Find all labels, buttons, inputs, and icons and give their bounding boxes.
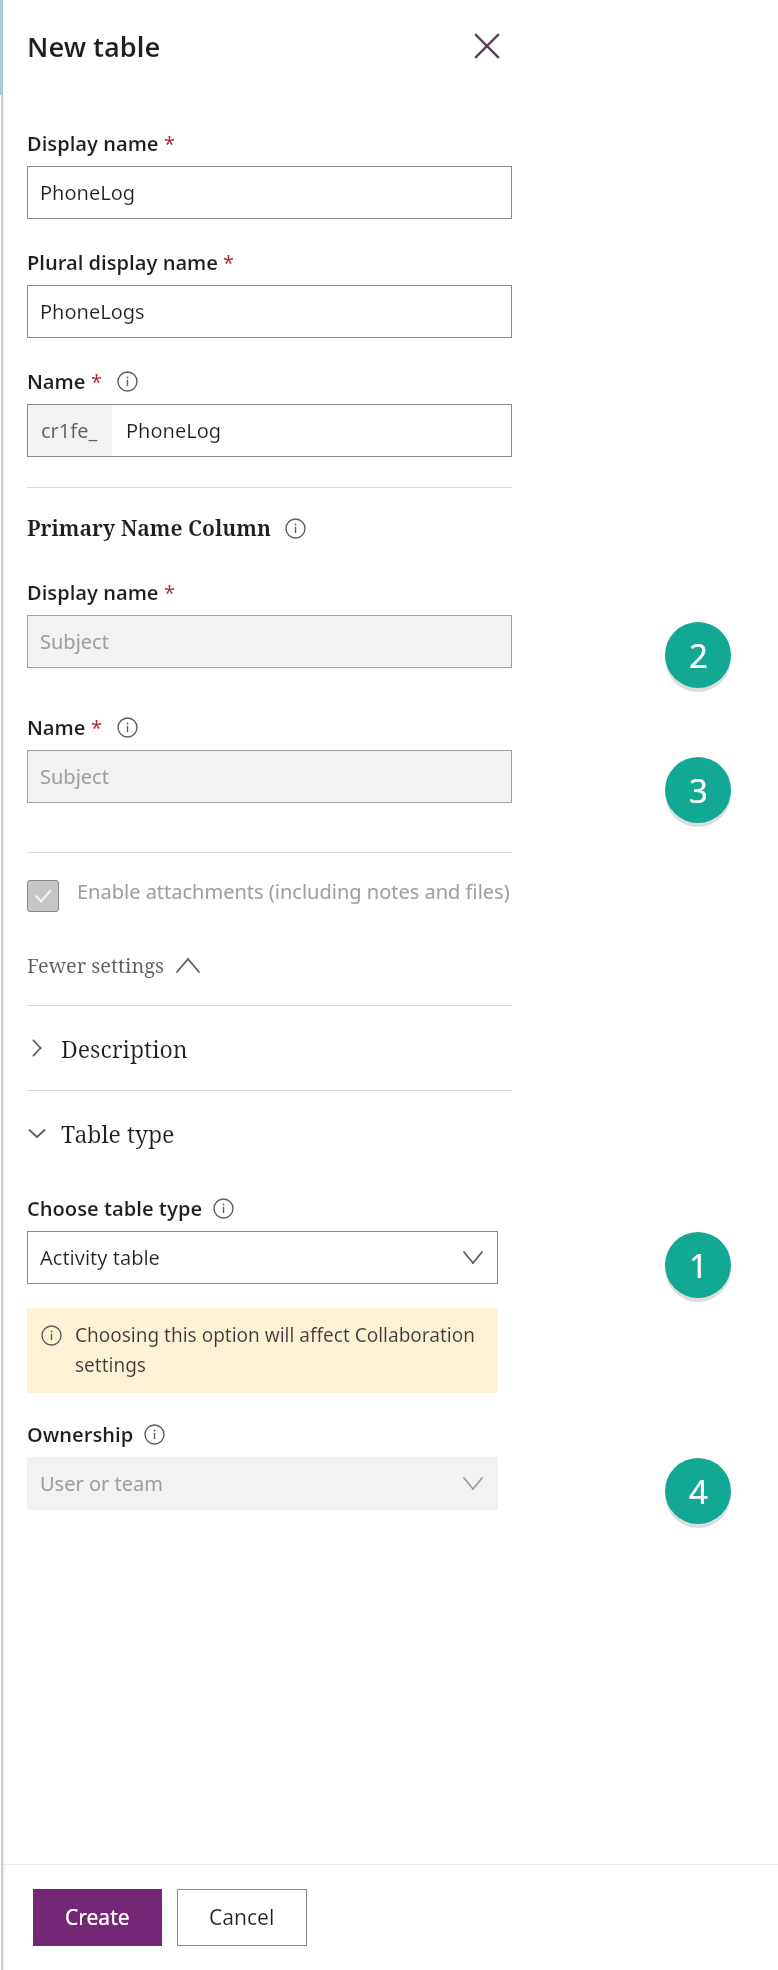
button[interactable]: Subject bbox=[27, 750, 512, 803]
button[interactable]: Description bbox=[27, 1028, 512, 1068]
staticText: Fewer settings bbox=[27, 952, 165, 979]
button[interactable]: Fewer settings bbox=[27, 952, 199, 979]
staticText: Plural display name bbox=[27, 249, 218, 276]
button[interactable]: More information bbox=[285, 518, 306, 539]
staticText: * bbox=[91, 368, 103, 395]
button[interactable]: More information bbox=[117, 371, 138, 392]
staticText: PhoneLog bbox=[40, 179, 136, 206]
button[interactable]: Close bbox=[462, 21, 512, 71]
staticText: * bbox=[91, 714, 103, 741]
staticText: Cancel bbox=[209, 1903, 275, 1932]
staticText: Description bbox=[61, 1033, 188, 1064]
staticText: New table bbox=[27, 28, 161, 65]
staticText: Display name bbox=[27, 130, 159, 157]
button[interactable]: Activity table bbox=[27, 1231, 498, 1284]
button[interactable]: PhoneLog bbox=[27, 166, 512, 219]
staticText: Subject bbox=[40, 628, 109, 655]
staticText: User or team bbox=[40, 1470, 163, 1497]
staticText: Create bbox=[65, 1903, 130, 1932]
staticText: 1 bbox=[689, 1243, 708, 1288]
button[interactable]: Create bbox=[33, 1889, 162, 1946]
staticText: Choose table type bbox=[27, 1195, 203, 1222]
staticText: 4 bbox=[689, 1469, 708, 1514]
button[interactable]: More information bbox=[213, 1198, 234, 1219]
button[interactable]: More information bbox=[41, 1325, 62, 1346]
staticText: Ownership bbox=[27, 1421, 134, 1448]
staticText: Choosing this option will affect Collabo… bbox=[75, 1322, 486, 1377]
staticText: Activity table bbox=[40, 1244, 160, 1271]
staticText: cr1fe_ bbox=[41, 417, 98, 444]
button[interactable]: Cancel bbox=[177, 1889, 307, 1946]
button[interactable]: User or team bbox=[27, 1457, 498, 1510]
staticText: * bbox=[223, 249, 235, 276]
staticText: Primary Name Column bbox=[27, 514, 272, 543]
button[interactable]: Subject bbox=[27, 615, 512, 668]
staticText: Subject bbox=[40, 763, 109, 790]
button[interactable]: Table type bbox=[27, 1113, 512, 1153]
staticText: 3 bbox=[689, 768, 708, 813]
staticText: PhoneLog bbox=[126, 417, 222, 444]
staticText: PhoneLogs bbox=[40, 298, 145, 325]
staticText: Enable attachments (including notes and … bbox=[77, 878, 510, 905]
staticText: Name bbox=[27, 368, 86, 395]
staticText: Table type bbox=[61, 1118, 175, 1149]
button[interactable]: Enable attachments (including notes and … bbox=[27, 878, 512, 912]
button[interactable]: More information bbox=[144, 1424, 165, 1445]
staticText: Name bbox=[27, 714, 86, 741]
button[interactable]: cr1fe_ bbox=[27, 404, 512, 457]
staticText: 2 bbox=[689, 633, 708, 678]
staticText: * bbox=[164, 579, 176, 606]
button[interactable]: PhoneLogs bbox=[27, 285, 512, 338]
staticText: * bbox=[164, 130, 176, 157]
button[interactable]: More information bbox=[117, 717, 138, 738]
staticText: Display name bbox=[27, 579, 159, 606]
